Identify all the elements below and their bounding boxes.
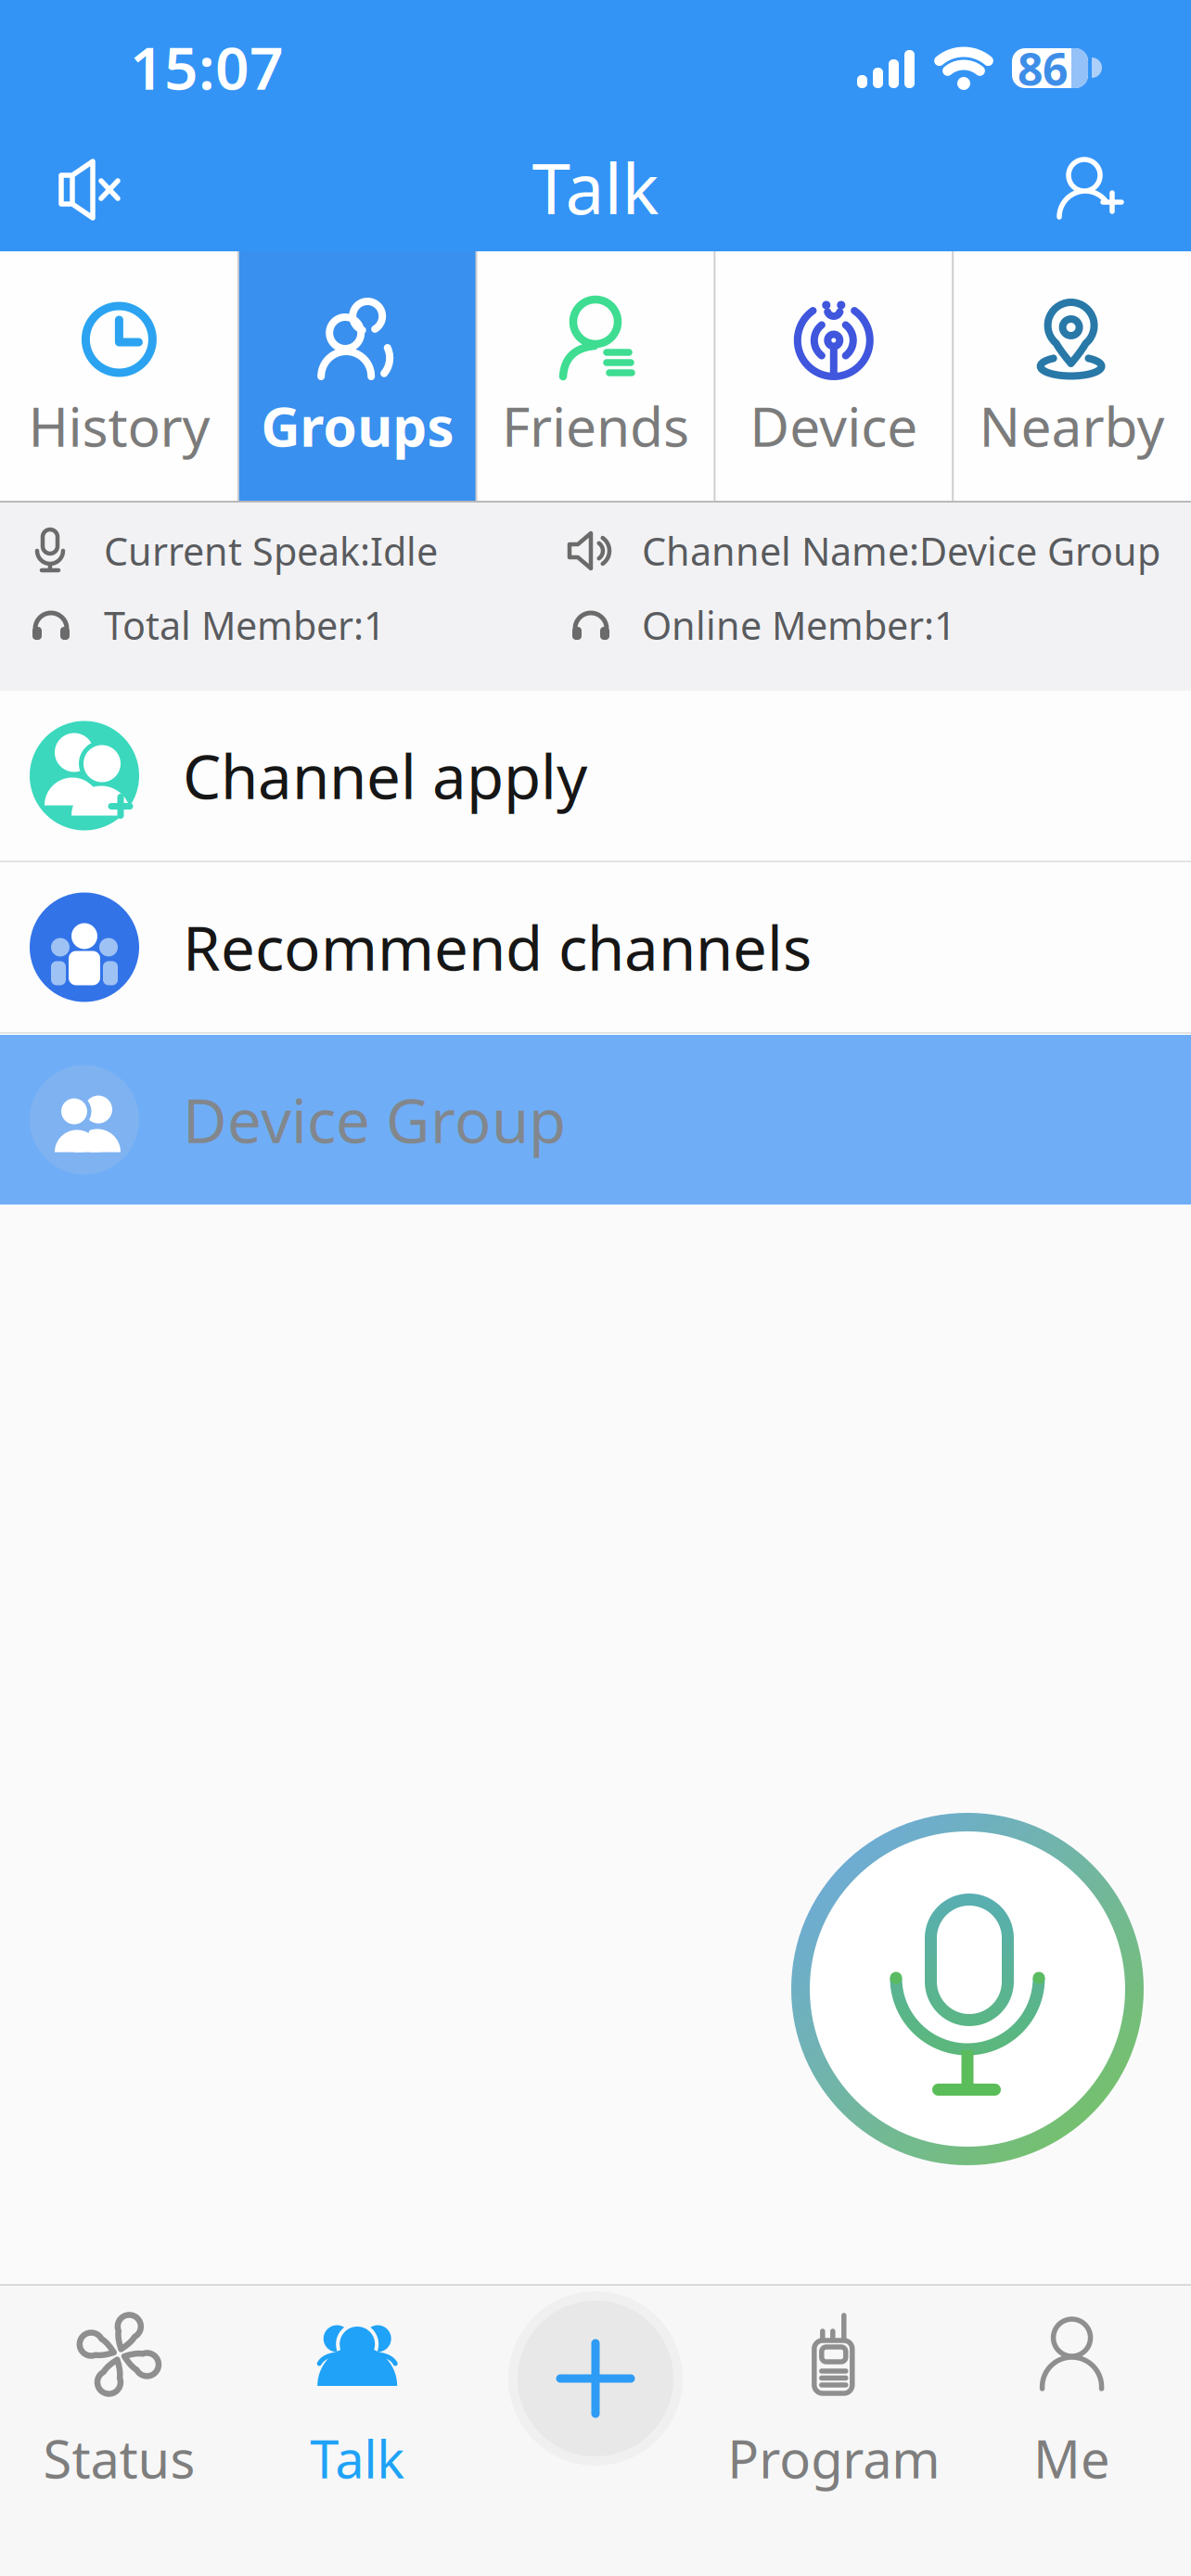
staticText: Program	[727, 2424, 940, 2493]
button[interactable]: Push to Talk	[789, 1811, 1146, 2167]
button[interactable]: Device	[715, 251, 953, 501]
button[interactable]: Recommend channels	[0, 862, 1191, 1032]
staticText: Online Member:1	[642, 600, 956, 650]
staticText: Groups	[261, 389, 454, 462]
staticText: Talk	[532, 141, 659, 233]
staticText: Current Speak:Idle	[104, 525, 438, 576]
staticText: Total Member:1	[104, 600, 386, 650]
staticText: 86	[1018, 39, 1068, 98]
button[interactable]: Channel apply	[0, 691, 1191, 861]
button[interactable]: Add	[476, 2286, 715, 2576]
staticText: Channel apply	[183, 735, 587, 816]
staticText: History	[28, 389, 210, 462]
staticText: Status	[43, 2424, 195, 2493]
button[interactable]: Mute	[60, 160, 120, 220]
staticText: Nearby	[979, 389, 1165, 462]
button[interactable]: Nearby	[953, 251, 1191, 501]
staticText: Device Group	[183, 1079, 566, 1160]
staticText: Me	[1033, 2424, 1110, 2493]
button[interactable]: Status	[0, 2286, 238, 2576]
staticText: Talk	[310, 2424, 405, 2493]
staticText: Recommend channels	[183, 907, 812, 987]
button[interactable]: Groups	[238, 251, 476, 501]
button[interactable]: Friends	[476, 251, 715, 501]
button[interactable]: Device Group	[0, 1035, 1191, 1205]
button[interactable]: Program	[715, 2286, 953, 2576]
button[interactable]: Talk	[238, 2286, 476, 2576]
staticText: Channel Name:Device Group	[642, 525, 1160, 576]
button[interactable]: Add Friend	[1058, 159, 1123, 220]
button[interactable]: Me	[953, 2286, 1191, 2576]
staticText: Device	[750, 389, 918, 462]
button[interactable]: History	[0, 251, 238, 501]
staticText: 15:07	[130, 27, 284, 106]
staticText: Friends	[502, 389, 689, 462]
